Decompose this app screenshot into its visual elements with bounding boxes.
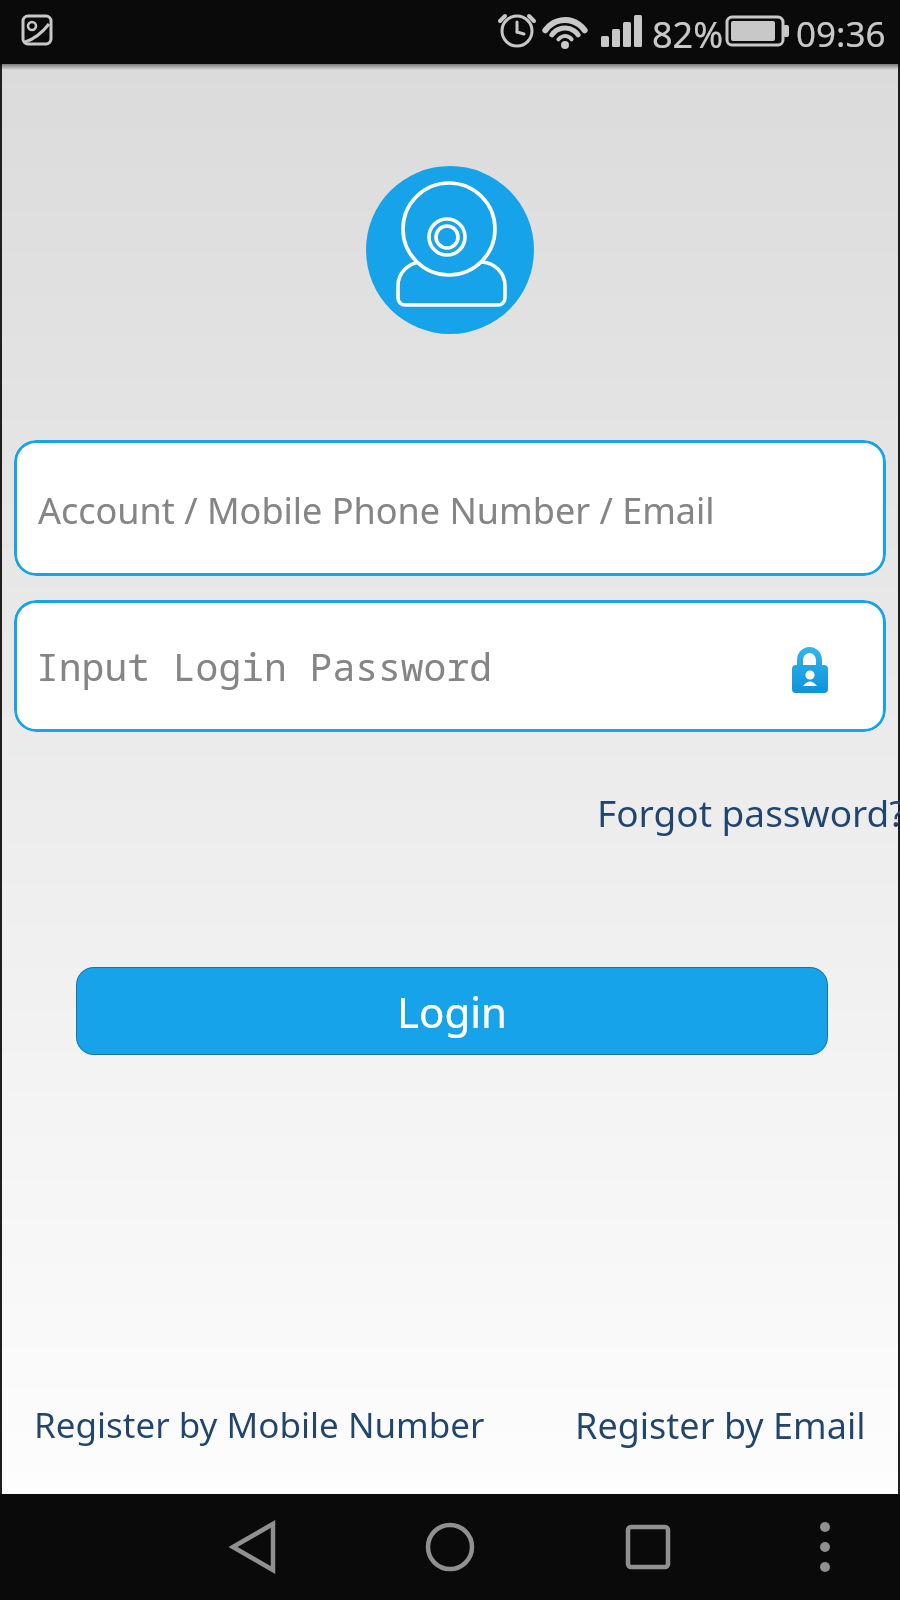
staticText: Login bbox=[397, 983, 508, 1040]
staticText: Account / Mobile Phone Number / Email bbox=[38, 486, 715, 535]
button[interactable] bbox=[608, 1507, 688, 1587]
button[interactable]: Register by Email bbox=[575, 1401, 866, 1450]
staticText: 82% bbox=[652, 10, 724, 59]
button[interactable]: Account / Mobile Phone Number / Email bbox=[14, 440, 886, 576]
button[interactable]: Register by Mobile Number bbox=[34, 1401, 485, 1449]
button[interactable]: Input Login Password bbox=[14, 600, 886, 732]
button[interactable] bbox=[213, 1507, 293, 1587]
staticText: Input Login Password bbox=[36, 640, 493, 692]
button[interactable]: Forgot password? bbox=[597, 787, 900, 837]
button[interactable]: Login bbox=[76, 967, 828, 1055]
button[interactable] bbox=[785, 1507, 865, 1587]
staticText: 09:36 bbox=[796, 10, 886, 58]
button[interactable] bbox=[410, 1507, 490, 1587]
